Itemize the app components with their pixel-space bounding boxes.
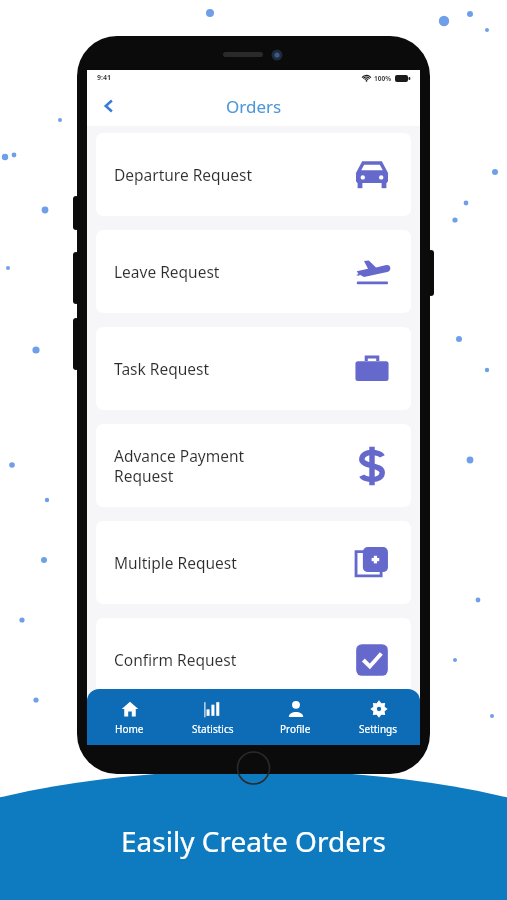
staticText: Multiple Request xyxy=(114,552,237,573)
staticText: Easily Create Orders xyxy=(121,822,386,860)
staticText: Leave Request xyxy=(114,261,220,282)
button[interactable]: Profile xyxy=(254,689,337,745)
button[interactable]: Confirm Request xyxy=(96,618,411,701)
staticText: Departure Request xyxy=(114,164,252,185)
button[interactable]: Statistics xyxy=(171,689,254,745)
staticText: Statistics xyxy=(192,722,234,736)
button[interactable]: Multiple Request xyxy=(96,521,411,604)
staticText: Orders xyxy=(226,95,282,118)
button[interactable]: Settings xyxy=(337,689,420,745)
button[interactable]: Advance Payment Request xyxy=(96,424,411,507)
button[interactable]: Leave Request xyxy=(96,230,411,313)
button[interactable]: Back xyxy=(93,90,125,122)
staticText: Advance Payment Request xyxy=(114,445,245,487)
staticText: Settings xyxy=(359,722,398,736)
button[interactable]: Departure Request xyxy=(96,133,411,216)
staticText: Task Request xyxy=(114,358,210,379)
staticText: 9:41 xyxy=(97,73,111,83)
staticText: Confirm Request xyxy=(114,649,237,670)
button[interactable]: Task Request xyxy=(96,327,411,410)
staticText: 100% xyxy=(374,74,392,83)
staticText: Home xyxy=(115,722,144,736)
staticText: Profile xyxy=(280,722,311,736)
button[interactable]: Home xyxy=(87,689,171,745)
